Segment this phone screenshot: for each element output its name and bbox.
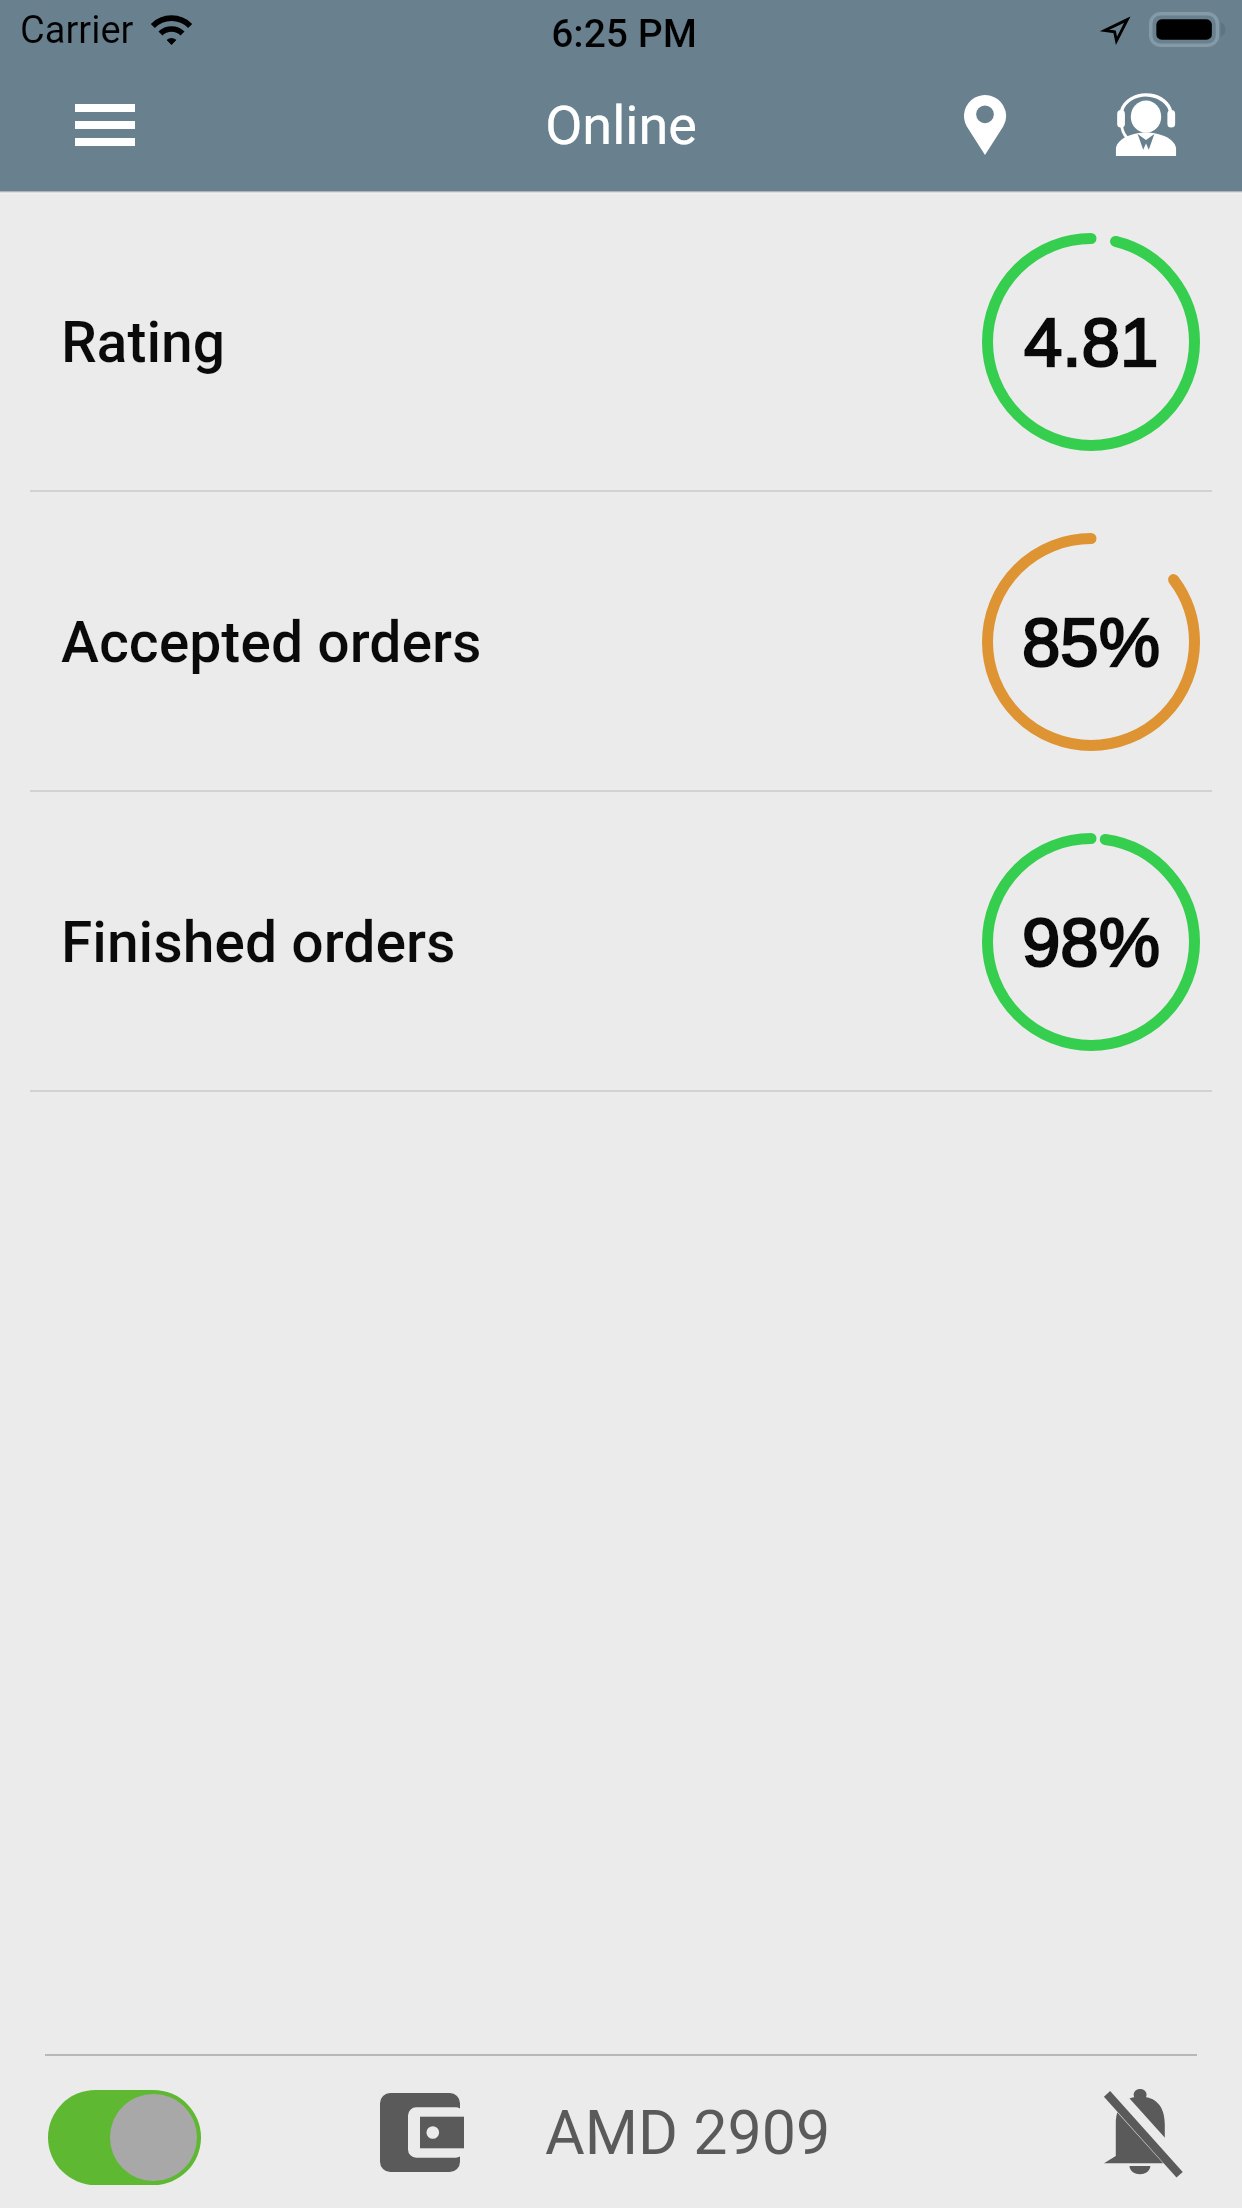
- button[interactable]: Finished orders: [0, 792, 1242, 1092]
- button[interactable]: Menu: [40, 85, 170, 165]
- staticText: Accepted orders: [61, 609, 482, 676]
- button[interactable]: Rating: [0, 192, 1242, 492]
- staticText: 4.81: [1024, 304, 1159, 381]
- staticText: AMD 2909: [545, 2097, 831, 2168]
- staticText: 6:25 PM: [3, 11, 1242, 57]
- staticText: Rating: [61, 309, 226, 376]
- staticText: Carrier: [20, 8, 134, 53]
- button[interactable]: Notifications off: [1092, 2083, 1192, 2183]
- staticText: Finished orders: [61, 909, 456, 976]
- button[interactable]: Support: [1090, 85, 1202, 165]
- button[interactable]: Accepted orders: [0, 492, 1242, 792]
- staticText: 98%: [1022, 904, 1161, 981]
- staticText: 85%: [1022, 604, 1161, 681]
- staticText: 98%: [1022, 904, 1161, 981]
- staticText: Online: [0, 94, 1242, 157]
- button[interactable]: Location: [930, 85, 1040, 165]
- staticText: 4.81: [1024, 304, 1159, 381]
- button[interactable]: Online toggle: [48, 2090, 201, 2185]
- staticText: 85%: [1022, 604, 1161, 681]
